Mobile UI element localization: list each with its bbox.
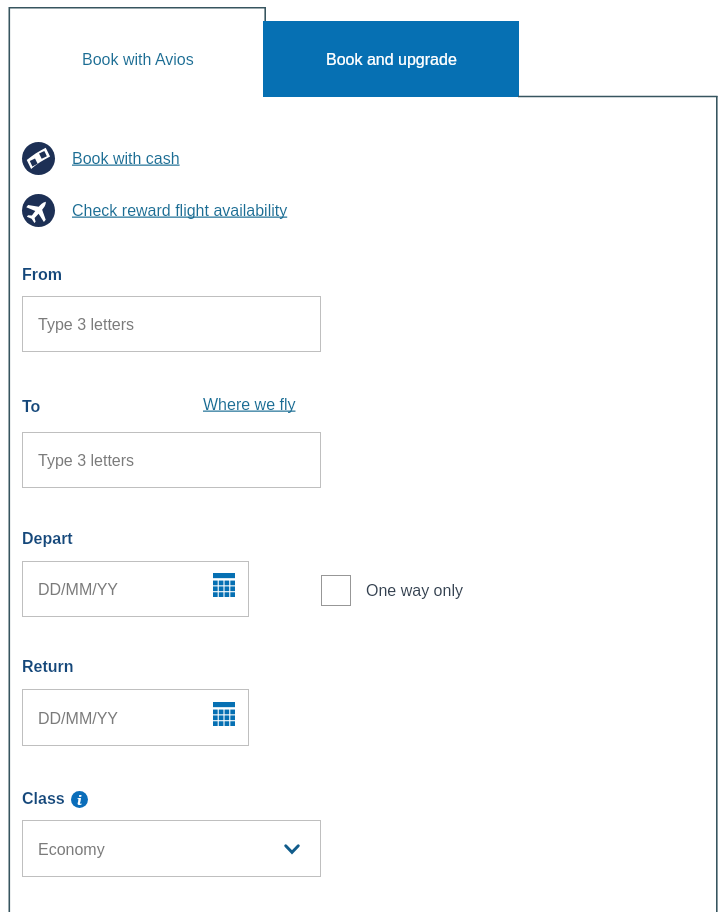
button[interactable]: Type 3 letters <box>22 296 321 352</box>
button[interactable]: DD/MM/YY <box>22 561 249 617</box>
staticText: DD/MM/YY <box>38 581 118 599</box>
staticText: Type 3 letters <box>38 452 135 470</box>
staticText: One way only <box>366 582 463 600</box>
staticText: Return <box>22 658 74 676</box>
button[interactable]: Check reward flight availability <box>22 194 288 227</box>
button[interactable]: Where we fly <box>203 396 296 414</box>
staticText: Check reward flight availability <box>72 202 288 220</box>
staticText: Book with cash <box>72 150 180 168</box>
button[interactable]: DD/MM/YY <box>22 689 249 746</box>
staticText: Economy <box>38 841 105 859</box>
staticText: To <box>22 398 41 416</box>
button[interactable]: One way only <box>321 575 463 606</box>
staticText: i <box>77 791 82 808</box>
staticText: Class <box>22 790 65 808</box>
staticText: Type 3 letters <box>38 316 135 334</box>
button[interactable]: Book and upgrade <box>263 21 519 97</box>
staticText: DD/MM/YY <box>38 710 118 728</box>
button[interactable]: Type 3 letters <box>22 432 321 488</box>
button[interactable]: Class information <box>71 791 88 808</box>
button[interactable]: Book with Avios <box>9 7 266 97</box>
staticText: Depart <box>22 530 73 548</box>
staticText: Book with Avios <box>82 51 194 69</box>
button[interactable]: Book with cash <box>22 142 180 175</box>
staticText: From <box>22 266 62 284</box>
button[interactable]: Economy <box>22 820 321 877</box>
staticText: Book and upgrade <box>326 51 457 69</box>
